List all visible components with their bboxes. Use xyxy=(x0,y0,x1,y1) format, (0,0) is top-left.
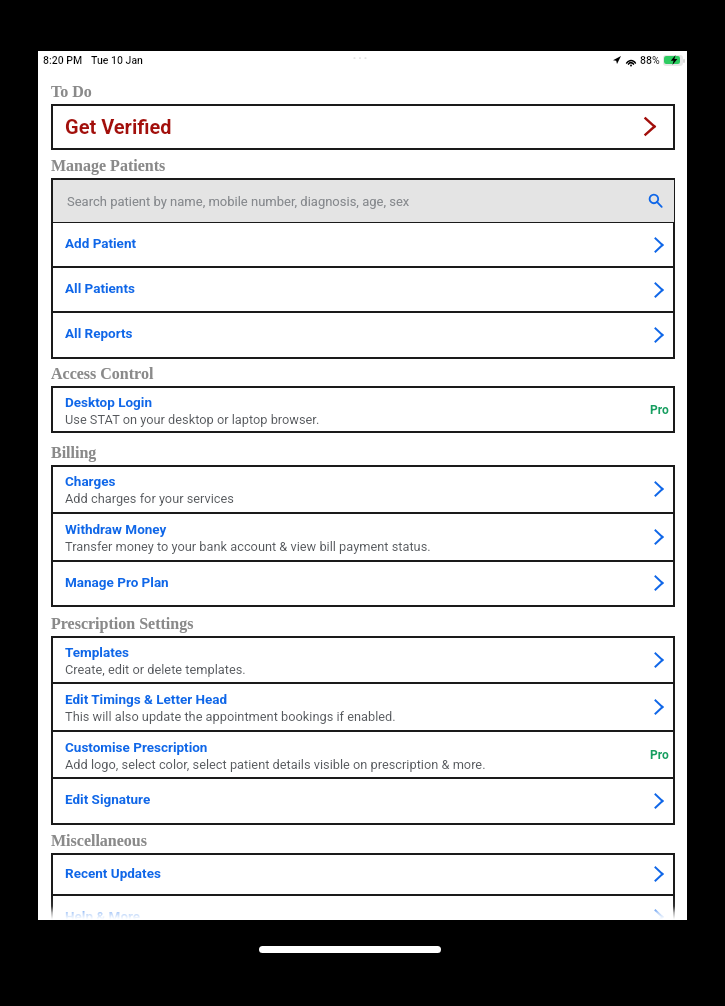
staticText: Recent Updates xyxy=(65,865,161,881)
staticText: Access Control xyxy=(51,365,154,383)
staticText: Desktop Login xyxy=(65,394,152,410)
button[interactable]: Withdraw Money xyxy=(51,513,675,561)
staticText: Get Verified xyxy=(65,115,172,138)
staticText: All Reports xyxy=(65,325,133,341)
staticText: All Patients xyxy=(65,280,135,296)
button[interactable]: Customise Prescription xyxy=(51,731,675,778)
button[interactable]: Add Patient xyxy=(51,222,675,267)
staticText: Pro xyxy=(650,403,669,417)
staticText: Help & More xyxy=(65,908,141,920)
staticText: · · · xyxy=(353,53,368,65)
staticText: To Do xyxy=(51,83,92,101)
staticText: Add Patient xyxy=(65,235,137,251)
button[interactable]: Edit Timings & Letter Head xyxy=(51,683,675,731)
staticText: Miscellaneous xyxy=(51,832,147,850)
button[interactable]: Charges xyxy=(51,465,675,513)
staticText: This will also update the appointment bo… xyxy=(65,709,396,724)
button[interactable]: Get Verified xyxy=(51,104,675,148)
staticText: Templates xyxy=(65,644,129,660)
staticText: Search patient by name, mobile number, d… xyxy=(67,194,410,209)
staticText: Withdraw Money xyxy=(65,521,167,537)
button[interactable]: All Reports xyxy=(51,312,675,357)
button[interactable]: Edit Signature xyxy=(51,778,675,823)
staticText: 8:20 PM xyxy=(43,54,83,66)
staticText: 88% xyxy=(640,54,660,66)
staticText: Prescription Settings xyxy=(51,615,194,633)
staticText: Manage Patients xyxy=(51,157,166,175)
button[interactable]: Desktop Login xyxy=(51,386,675,431)
button[interactable]: Search patient by name, mobile number, d… xyxy=(53,180,674,222)
staticText: Create, edit or delete templates. xyxy=(65,662,246,677)
staticText: Edit Signature xyxy=(65,791,151,807)
staticText: Add charges for your services xyxy=(65,491,234,506)
button[interactable]: Manage Pro Plan xyxy=(51,561,675,605)
staticText: Add logo, select color, select patient d… xyxy=(65,757,486,772)
other: Search xyxy=(648,193,664,209)
staticText: Charges xyxy=(65,473,116,489)
button[interactable]: Help & More xyxy=(51,895,675,920)
staticText: Tue 10 Jan xyxy=(91,54,143,66)
staticText: Pro xyxy=(650,748,669,762)
staticText: Manage Pro Plan xyxy=(65,574,169,590)
staticText: Transfer money to your bank account & vi… xyxy=(65,539,431,554)
staticText: Billing xyxy=(51,444,97,462)
staticText: Customise Prescription xyxy=(65,739,208,755)
button[interactable]: Recent Updates xyxy=(51,853,675,895)
button[interactable]: Templates xyxy=(51,636,675,683)
staticText: Edit Timings & Letter Head xyxy=(65,691,228,707)
staticText: Use STAT on your desktop or laptop brows… xyxy=(65,412,320,427)
button[interactable]: All Patients xyxy=(51,267,675,312)
